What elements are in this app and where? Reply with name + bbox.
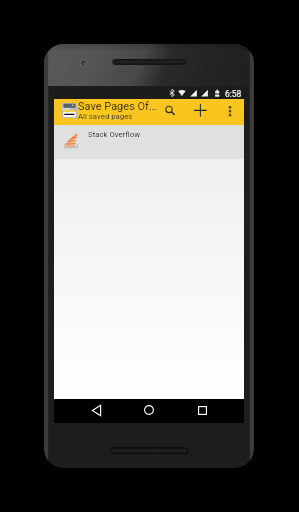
staticText: 6:58 [225, 89, 242, 99]
button[interactable]: Add [189, 100, 211, 122]
staticText: Save Pages Of… [78, 100, 157, 113]
button[interactable]: Recents [187, 398, 217, 422]
staticText: All saved pages [78, 112, 133, 121]
button[interactable]: More options [222, 101, 238, 123]
button[interactable]: Back [81, 398, 111, 422]
button[interactable]: Save Pages Of… [54, 99, 244, 125]
button[interactable]: Home [134, 398, 164, 422]
button[interactable]: Search [159, 97, 179, 117]
button[interactable]: Stack Overflow [54, 125, 244, 159]
staticText: Stack Overflow [88, 130, 140, 139]
